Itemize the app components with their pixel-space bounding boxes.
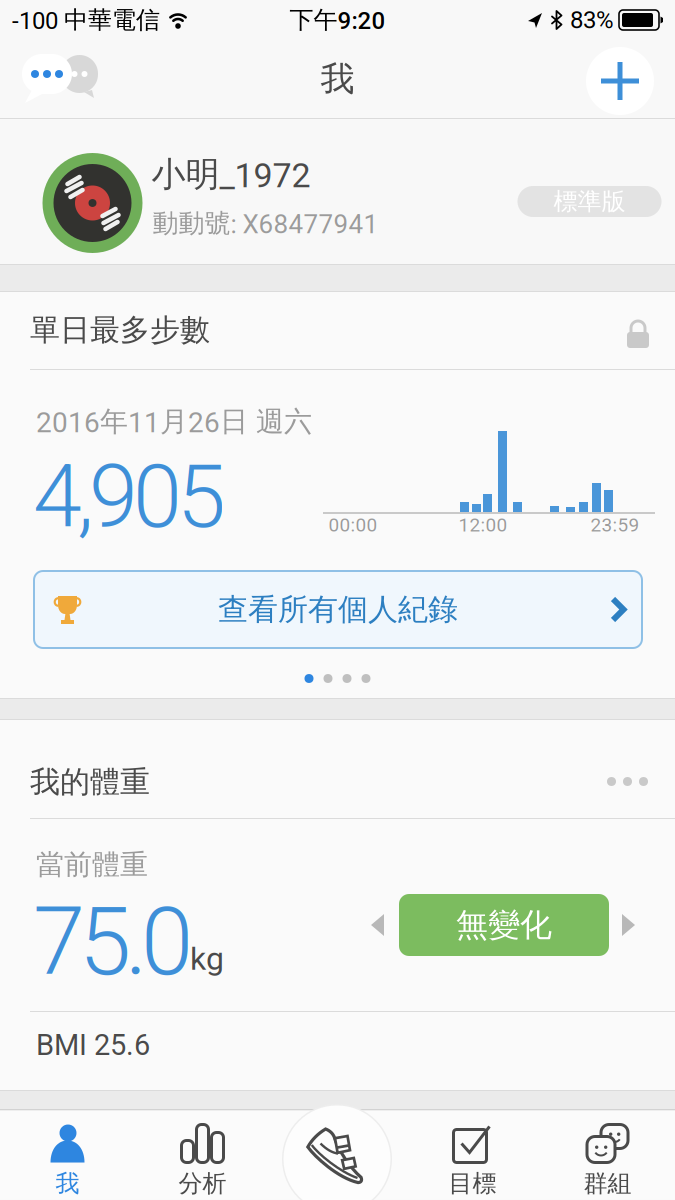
staticText: 標準版 [553,186,625,217]
staticText: 無變化 [456,905,552,945]
button[interactable]: 無變化 [0,720,609,956]
button[interactable] [282,1104,392,1200]
staticText: 00:00 [328,514,377,536]
button[interactable] [0,720,385,936]
staticText: 目標 [448,1168,496,1199]
staticText: 分析 [178,1168,226,1199]
button[interactable] [0,40,654,115]
staticText: 當前體重 [36,847,148,882]
staticText: 83% [570,6,614,34]
staticText: 12:00 [458,514,507,536]
staticText: -100 中華電信 [12,5,160,35]
button[interactable]: 分析 [135,1124,270,1200]
staticText: 動動號: X68477941 [152,207,378,240]
staticText: 2016年11月26日 週六 [36,404,312,439]
button[interactable]: 小明_1972 [0,119,675,264]
staticText: 我 [320,58,354,100]
button[interactable]: 群組 [540,1124,675,1200]
button[interactable]: 我 [0,1124,135,1200]
button[interactable] [0,720,635,936]
button[interactable]: 目標 [405,1124,540,1200]
staticText: 下午9:20 [289,5,385,35]
staticText: 我的體重 [30,763,150,801]
staticText: 4,905 [33,445,226,548]
staticText: BMI 25.6 [36,1028,150,1062]
staticText: kg [190,940,224,977]
staticText: 群組 [583,1168,631,1199]
staticText: 查看所有個人紀錄 [218,591,458,628]
staticText: 我 [55,1168,79,1199]
staticText: 23:59 [590,514,639,536]
button[interactable] [0,40,100,106]
staticText: 75.0 [33,887,193,997]
button[interactable]: 查看所有個人紀錄 [0,292,642,648]
staticText: 小明_1972 [151,153,310,196]
staticText: 單日最多步數 [30,311,210,349]
